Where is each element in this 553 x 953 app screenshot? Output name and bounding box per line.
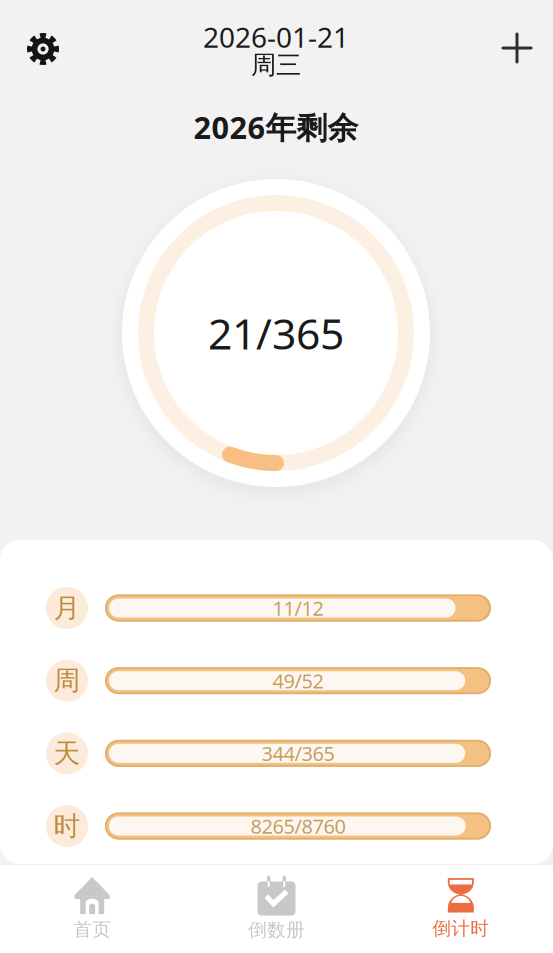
button[interactable]: 首页 — [0, 863, 184, 953]
staticText: 倒计时 — [432, 917, 489, 940]
staticText: 8265/8760 — [250, 813, 345, 839]
button[interactable]: Add countdown — [486, 18, 548, 78]
staticText: 344/365 — [261, 740, 334, 767]
staticText: 11/12 — [272, 595, 323, 621]
staticText: 月 — [53, 592, 80, 624]
staticText: 时 — [53, 810, 80, 842]
staticText: 天 — [53, 737, 80, 770]
button[interactable]: 倒计时 — [369, 864, 553, 953]
staticText: 倒数册 — [248, 918, 305, 941]
button[interactable]: 倒数册 — [184, 862, 369, 953]
staticText: 首页 — [73, 918, 111, 941]
staticText: 周三 — [251, 49, 301, 80]
staticText: 49/52 — [272, 667, 323, 694]
button[interactable]: Settings — [12, 19, 74, 79]
staticText: 21/365 — [208, 305, 344, 361]
staticText: 2026年剩余 — [193, 107, 358, 147]
staticText: 2026-01-21 — [203, 18, 349, 56]
staticText: 周 — [53, 664, 80, 697]
